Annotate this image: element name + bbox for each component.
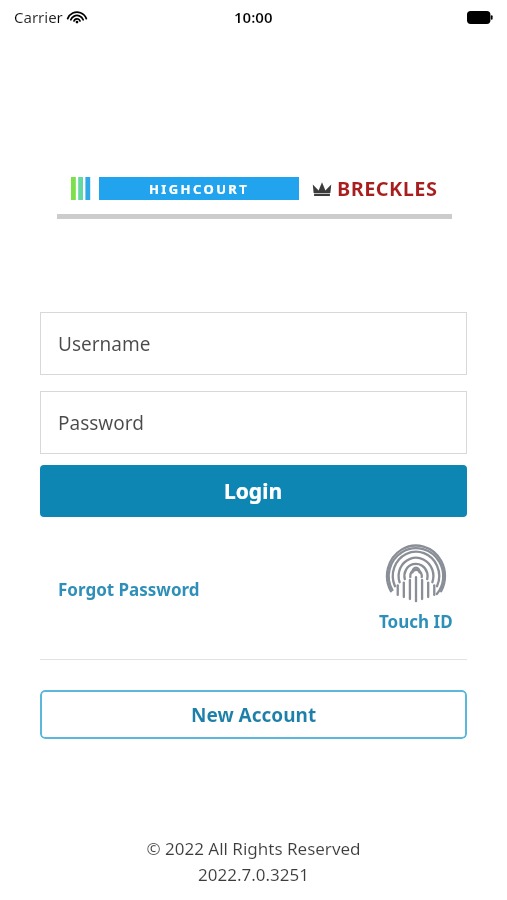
button[interactable]: Login <box>40 465 467 517</box>
button[interactable]: Password <box>40 391 467 454</box>
staticText: Touch ID <box>379 610 453 632</box>
staticText: 10:00 <box>234 7 273 27</box>
staticText: New Account <box>191 702 317 728</box>
staticText: Username <box>58 331 151 357</box>
staticText: BRECKLES <box>337 175 438 202</box>
staticText: Password <box>58 410 144 436</box>
button[interactable]: Forgot Password <box>52 572 206 607</box>
staticText: 2022.7.0.3251 <box>198 863 309 886</box>
button[interactable]: Username <box>40 312 467 375</box>
button[interactable]: Touch ID <box>373 544 459 634</box>
staticText: HIGHCOURT <box>149 180 250 198</box>
button[interactable]: New Account <box>40 690 467 739</box>
staticText: Login <box>224 477 283 506</box>
staticText: Forgot Password <box>58 578 200 601</box>
staticText: © 2022 All Rights Reserved <box>146 837 361 860</box>
staticText: Carrier <box>14 7 63 27</box>
